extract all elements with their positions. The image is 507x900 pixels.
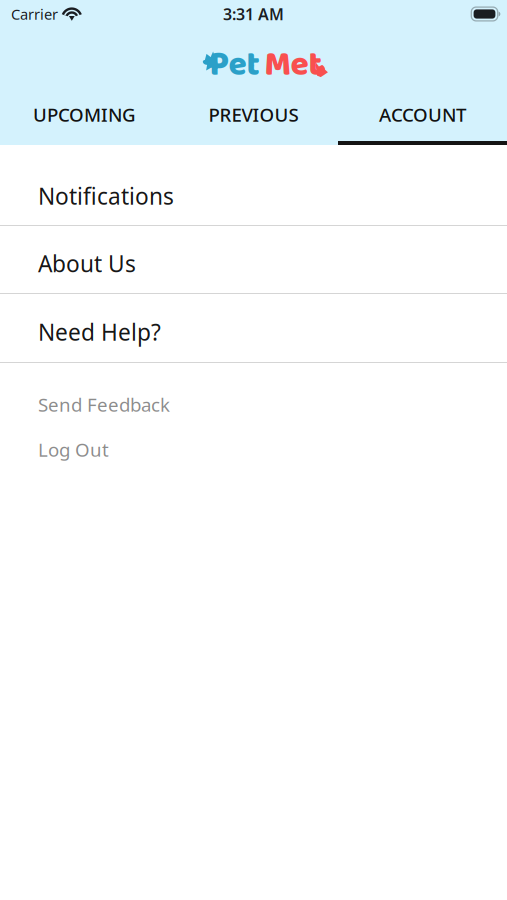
- button[interactable]: PREVIOUS: [169, 98, 338, 145]
- button[interactable]: Need Help?: [0, 294, 507, 363]
- button[interactable]: Send Feedback: [0, 382, 507, 427]
- staticText: Send Feedback: [38, 392, 170, 417]
- button[interactable]: UPCOMING: [0, 98, 169, 145]
- staticText: 3:31 AM: [223, 3, 284, 25]
- staticText: Pet: [209, 38, 259, 92]
- staticText: Carrier: [11, 4, 58, 24]
- button[interactable]: Log Out: [0, 427, 507, 472]
- staticText: Need Help?: [38, 317, 161, 347]
- staticText: UPCOMING: [33, 102, 136, 127]
- staticText: PREVIOUS: [208, 102, 298, 127]
- staticText: Met: [264, 38, 321, 92]
- staticText: About Us: [38, 248, 136, 278]
- staticText: ACCOUNT: [379, 102, 466, 127]
- button[interactable]: ACCOUNT: [338, 98, 507, 145]
- button[interactable]: About Us: [0, 226, 507, 294]
- button[interactable]: Notifications: [0, 145, 507, 226]
- staticText: Log Out: [38, 437, 109, 462]
- staticText: Notifications: [38, 181, 174, 211]
